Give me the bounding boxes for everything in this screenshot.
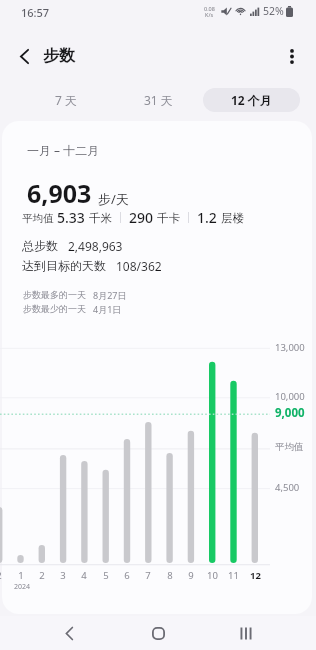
staticText: 7 — [145, 569, 151, 582]
staticText: 31 天 — [144, 92, 173, 108]
staticText: 步数最多的一天 — [23, 289, 86, 300]
button[interactable]: Back — [7, 39, 41, 73]
staticText: 12 — [250, 569, 261, 582]
staticText: 层楼 — [221, 211, 244, 225]
staticText: 1 — [18, 569, 24, 582]
staticText: 4月1日 — [93, 303, 122, 315]
staticText: 8月27日 — [93, 289, 127, 301]
staticText: 108/362 — [116, 258, 162, 274]
button[interactable]: More options — [276, 40, 308, 72]
button[interactable]: Recent apps — [224, 616, 268, 650]
staticText: 7 天 — [55, 92, 77, 108]
staticText: 0.08 — [204, 5, 215, 12]
button[interactable]: Back — [47, 616, 91, 650]
staticText: 16:57 — [21, 5, 50, 20]
staticText: 2,498,963 — [68, 238, 123, 254]
staticText: 9 — [188, 569, 194, 582]
staticText: 6,903 — [27, 176, 92, 210]
button[interactable]: 12 个月 — [203, 88, 300, 112]
staticText: 步/天 — [98, 190, 129, 208]
staticText: 52% — [263, 4, 284, 18]
staticText: 5.33 — [57, 208, 89, 227]
staticText: 8 — [167, 569, 173, 582]
staticText: 千米 — [89, 211, 112, 225]
staticText: K/s — [205, 11, 214, 18]
staticText: 11 — [228, 569, 239, 582]
staticText: 1.2 — [197, 208, 221, 227]
staticText: 12 个月 — [231, 92, 272, 108]
staticText: 290 — [129, 208, 157, 227]
staticText: 平均值 — [275, 441, 304, 453]
staticText: 13,000 — [275, 341, 305, 354]
staticText: 2024 — [14, 582, 31, 592]
staticText: 10,000 — [275, 390, 305, 403]
button[interactable]: 7 天 — [19, 88, 113, 112]
staticText: 达到目标的天数 — [22, 258, 106, 273]
staticText: 2 — [0, 569, 2, 582]
staticText: 平均值 — [22, 211, 57, 225]
staticText: 一月 – 十二月 — [27, 142, 100, 158]
staticText: 总步数 — [22, 238, 58, 253]
staticText: 2 — [39, 569, 45, 582]
staticText: 步数 — [43, 46, 75, 66]
staticText: 3 — [60, 569, 66, 582]
button[interactable]: Home — [136, 616, 180, 650]
button[interactable]: 31 天 — [111, 88, 205, 112]
staticText: 4 — [81, 569, 87, 582]
staticText: 4,500 — [275, 481, 300, 494]
staticText: 5 — [103, 569, 109, 582]
staticText: 步数最少的一天 — [23, 303, 86, 314]
staticText: 9,000 — [275, 405, 305, 421]
staticText: 千卡 — [157, 211, 180, 225]
staticText: 10 — [207, 569, 218, 582]
staticText: 6 — [124, 569, 130, 582]
